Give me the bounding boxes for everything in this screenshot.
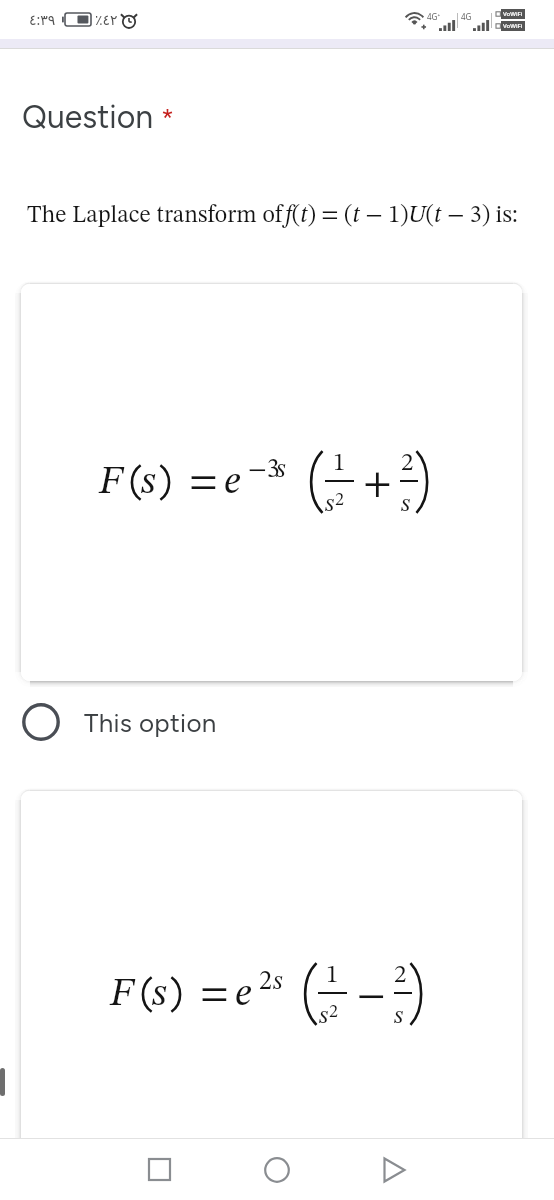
staticText: 4G⁺ [427,11,441,22]
button[interactable]: Back [363,1139,426,1200]
staticText: This option [84,707,217,738]
staticText: s [319,1004,329,1029]
staticText: The Laplace transform of f(t) = (t − 1)U… [27,204,518,228]
button[interactable]: F [16,279,527,686]
staticText: s [273,969,283,995]
button[interactable]: This option [0,694,554,750]
staticText: = [200,975,229,1015]
staticText: 1 [326,963,339,988]
staticText: VoWiFi [503,10,523,18]
staticText: VoWiFi [503,22,523,30]
button[interactable]: F [16,786,527,1193]
staticText: s [276,457,286,483]
staticText: 2 [394,963,407,988]
staticText: ٪٤٢ [95,12,118,28]
staticText: 4G [461,11,472,22]
staticText: e [224,463,241,503]
staticText: − [357,977,386,1017]
staticText: 2 [259,969,272,995]
staticText: e [235,975,252,1015]
staticText: s [141,463,156,503]
staticText: s [325,492,335,517]
staticText: = [189,463,218,503]
button[interactable]: Home [245,1139,308,1200]
staticText: s [401,492,411,517]
staticText: s [394,1004,404,1029]
staticText: ٤:٣٩ [29,10,56,29]
staticText: 1 [333,451,346,476]
staticText: Question * [22,98,175,136]
staticText: −3 [248,457,280,483]
staticText: 2 [329,1003,338,1021]
staticText: 2 [335,491,344,509]
button[interactable]: Recents [128,1139,191,1200]
staticText: + [363,465,392,505]
staticText: F [110,975,134,1015]
staticText: F [99,463,123,503]
staticText: s [152,975,167,1015]
staticText: 2 [401,451,414,476]
